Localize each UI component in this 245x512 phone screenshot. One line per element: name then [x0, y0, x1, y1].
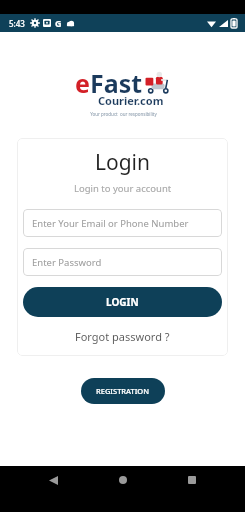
staticText: Fast — [90, 66, 143, 100]
staticText: e — [75, 66, 90, 100]
button[interactable]: Back — [36, 466, 70, 494]
button[interactable]: Home — [106, 466, 140, 494]
button[interactable]: LOGIN — [23, 287, 222, 317]
staticText: Enter Your Email or Phone Number — [32, 217, 189, 230]
staticText: REGISTRATION — [96, 386, 150, 396]
staticText: Login to your account — [74, 182, 172, 195]
button[interactable]: Enter Your Email or Phone Number — [23, 209, 222, 237]
button[interactable]: Enter Password — [23, 248, 222, 276]
button[interactable]: Forgot password ? — [67, 326, 178, 347]
button[interactable]: Recent apps — [175, 466, 209, 494]
staticText: 5:43 — [9, 18, 25, 29]
staticText: G — [55, 17, 62, 29]
staticText: Courier.com — [98, 93, 164, 108]
staticText: Your product our responsibility — [90, 111, 157, 117]
staticText: Login — [95, 148, 151, 177]
button[interactable]: REGISTRATION — [81, 378, 165, 404]
staticText: Enter Password — [32, 256, 102, 269]
staticText: LOGIN — [106, 295, 139, 309]
staticText: Forgot password ? — [75, 329, 170, 344]
